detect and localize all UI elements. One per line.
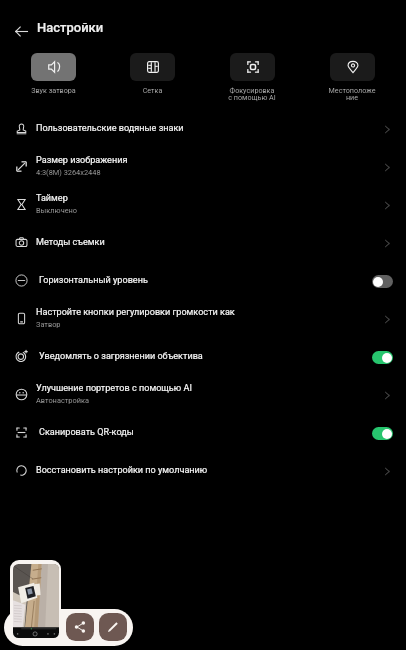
- staticText: Автонастройка: [36, 396, 89, 405]
- staticText: Уведомлять о загрязнении объектива: [39, 351, 203, 362]
- staticText: Настройки: [37, 20, 104, 35]
- staticText: Настройте кнопки регулировки громкости к…: [36, 307, 235, 318]
- staticText: 4:3(8M) 3264x2448: [36, 168, 101, 177]
- button[interactable]: Фокусировка с помощью AI: [202, 53, 302, 102]
- button[interactable]: Восстановить настройки по умолчанию: [0, 451, 406, 489]
- button[interactable]: Горизонтальный уровень: [0, 261, 406, 299]
- button[interactable]: Сканировать QR-коды: [0, 413, 406, 451]
- button[interactable]: Back: [3, 13, 39, 49]
- button[interactable]: Сетка: [103, 53, 202, 94]
- staticText: Фокусировка с помощью AI: [202, 86, 302, 102]
- staticText: Методы съемки: [36, 237, 105, 248]
- button[interactable]: Off: [372, 275, 393, 288]
- staticText: Сетка: [103, 86, 202, 94]
- staticText: Звук затвора: [4, 86, 103, 94]
- staticText: Улучшение портретов с помощью AI: [36, 383, 192, 394]
- staticText: Выключено: [36, 206, 78, 215]
- staticText: Горизонтальный уровень: [39, 275, 148, 286]
- button[interactable]: Настройте кнопки регулировки громкости к…: [0, 299, 406, 337]
- button[interactable]: Размер изображения: [0, 147, 406, 185]
- staticText: Восстановить настройки по умолчанию: [36, 465, 208, 476]
- button[interactable]: Местоположе ние: [302, 53, 402, 102]
- button[interactable]: Пользовательские водяные знаки: [0, 109, 406, 147]
- button[interactable]: Звук затвора: [4, 53, 103, 94]
- button[interactable]: On: [372, 351, 393, 364]
- staticText: Сканировать QR-коды: [39, 427, 134, 438]
- button[interactable]: Улучшение портретов с помощью AI: [0, 375, 406, 413]
- button[interactable]: Share: [66, 613, 94, 641]
- button[interactable]: Методы съемки: [0, 223, 406, 261]
- staticText: Таймер: [36, 193, 68, 204]
- button[interactable]: Screenshot preview: [10, 560, 61, 641]
- staticText: Пользовательские водяные знаки: [36, 123, 184, 134]
- staticText: Затвор: [36, 320, 61, 329]
- staticText: Размер изображения: [36, 155, 128, 166]
- button[interactable]: On: [372, 427, 393, 440]
- button[interactable]: Уведомлять о загрязнении объектива: [0, 337, 406, 375]
- button[interactable]: Таймер: [0, 185, 406, 223]
- button[interactable]: Edit: [99, 613, 127, 641]
- staticText: Местоположе ние: [302, 86, 402, 102]
